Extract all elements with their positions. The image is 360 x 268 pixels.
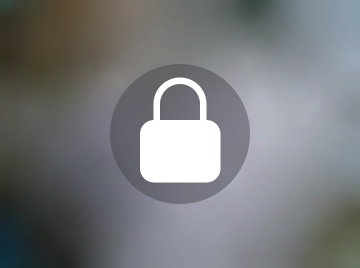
button[interactable]: Unlock [0,0,360,268]
